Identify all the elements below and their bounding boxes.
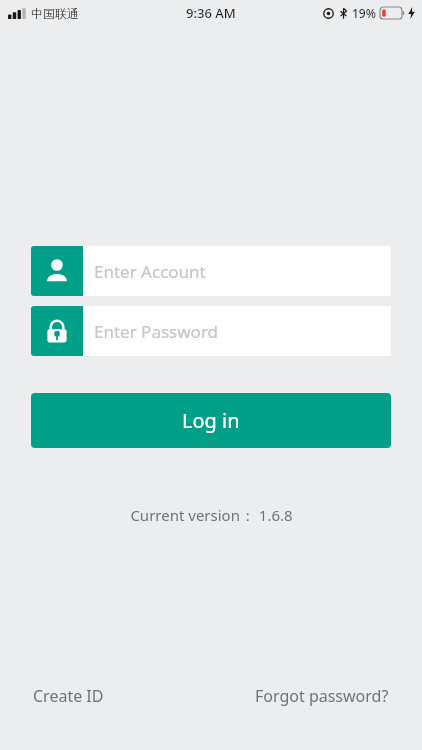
staticText: Enter Account (94, 260, 206, 283)
other: Password (31, 306, 83, 356)
other: Account (31, 246, 83, 296)
staticText: Log in (182, 407, 240, 434)
staticText: 19% (352, 5, 376, 21)
staticText: 中国联通 (31, 6, 79, 21)
staticText: 9:36 AM (186, 4, 236, 22)
button[interactable]: Log in (31, 393, 391, 448)
button[interactable]: Account (31, 246, 391, 296)
staticText: Current version： 1.6.8 (130, 505, 293, 525)
button[interactable]: Password (31, 306, 391, 356)
staticText: Enter Password (94, 320, 219, 343)
button[interactable]: Create ID (31, 679, 106, 713)
staticText: Create ID (33, 685, 104, 707)
button[interactable]: Forgot password? (253, 679, 391, 713)
staticText: Forgot password? (255, 685, 389, 707)
